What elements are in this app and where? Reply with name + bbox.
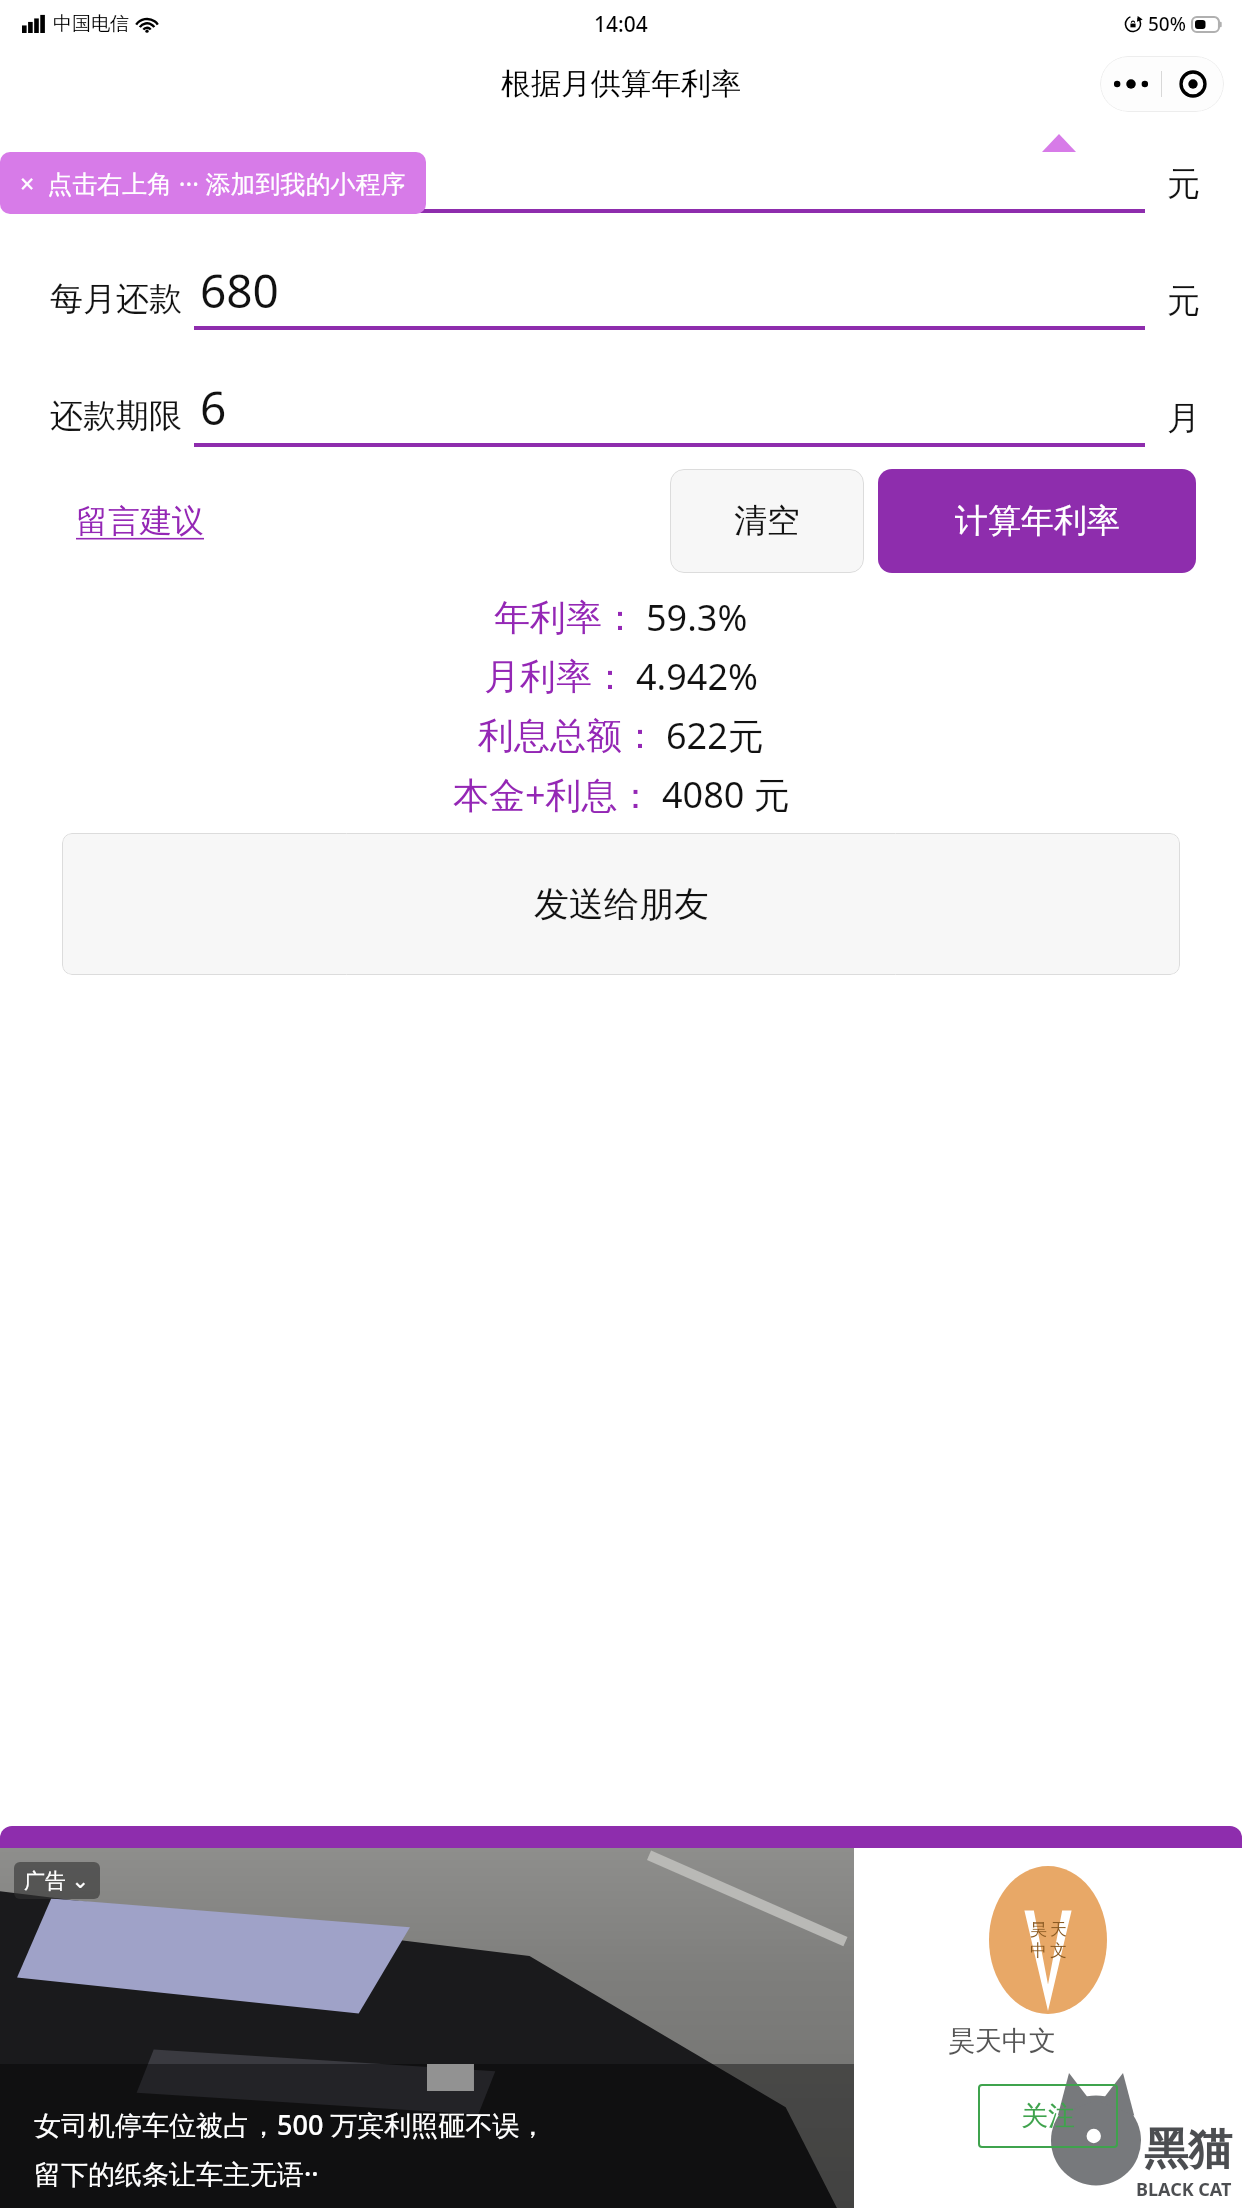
- button[interactable]: × 点击右上角 ··· 添加到我的小程序: [0, 152, 426, 214]
- staticText: 中: [1030, 1940, 1047, 1961]
- staticText: 年利率：: [494, 595, 638, 640]
- staticText: 昊: [1030, 1919, 1047, 1940]
- staticText: 清空: [734, 500, 800, 542]
- staticText: 发送给朋友: [534, 882, 709, 926]
- staticText: 还款期限: [50, 395, 182, 437]
- staticText: 留言建议: [76, 501, 204, 541]
- staticText: 文: [1050, 1940, 1067, 1961]
- staticText: 50%: [1148, 11, 1186, 37]
- staticText: 计算年利率: [955, 500, 1120, 542]
- staticText: 3458: [200, 142, 306, 205]
- staticText: 14:04: [594, 10, 648, 39]
- staticText: 中国电信: [53, 12, 129, 36]
- staticText: 关注: [1021, 2099, 1075, 2133]
- staticText: 月利率：: [484, 654, 628, 699]
- staticText: 每月还款: [50, 278, 182, 320]
- staticText: 利息总额：: [478, 713, 658, 758]
- staticText: 天: [1050, 1919, 1067, 1940]
- staticText: 根据月供算年利率: [501, 65, 741, 103]
- button[interactable]: More: [1100, 56, 1161, 112]
- button[interactable]: 清空: [670, 469, 864, 573]
- button[interactable]: 6: [194, 376, 1145, 447]
- staticText: 680: [200, 259, 279, 322]
- staticText: 广告 ⌄: [24, 1866, 90, 1895]
- staticText: BLACK CAT: [1136, 2177, 1232, 2202]
- button[interactable]: 计算年利率: [878, 469, 1196, 573]
- staticText: 留下的纸条让车主无语··: [34, 2155, 319, 2192]
- staticText: 月: [1167, 397, 1200, 439]
- button[interactable]: 留言建议: [50, 486, 230, 556]
- button[interactable]: 发送给朋友: [62, 833, 1180, 975]
- button[interactable]: 680: [194, 259, 1145, 330]
- staticText: 贷款金额: [50, 161, 182, 203]
- staticText: 本金+利息：: [453, 770, 654, 819]
- button[interactable]: 广告 ⌄: [0, 1848, 854, 2208]
- staticText: 元: [1167, 163, 1200, 205]
- button[interactable]: 关注: [978, 2084, 1118, 2148]
- staticText: 4080 元: [662, 770, 790, 819]
- staticText: 女司机停车位被占，500 万宾利照砸不误，: [34, 2106, 547, 2143]
- staticText: 6: [200, 376, 227, 439]
- staticText: 元: [1167, 280, 1200, 322]
- staticText: 59.3%: [646, 593, 748, 642]
- staticText: 黑猫: [1144, 2122, 1232, 2177]
- staticText: 622元: [666, 711, 764, 760]
- button[interactable]: Close: [1162, 56, 1224, 112]
- staticText: × 点击右上角 ··· 添加到我的小程序: [20, 166, 406, 200]
- button[interactable]: 3458: [194, 142, 1145, 213]
- staticText: 昊天中文: [948, 2024, 1148, 2058]
- staticText: 4.942%: [636, 652, 758, 701]
